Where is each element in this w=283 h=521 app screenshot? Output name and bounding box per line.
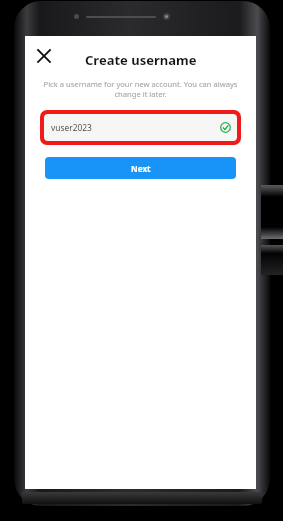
button[interactable]: Close <box>30 42 58 70</box>
button[interactable]: vuser2023 <box>44 114 237 141</box>
staticText: Next <box>131 163 151 174</box>
staticText: vuser2023 <box>51 122 92 133</box>
staticText: Pick a username for your new account. Yo… <box>43 79 238 99</box>
staticText: Create username <box>85 51 197 69</box>
button[interactable]: Next <box>45 157 236 179</box>
